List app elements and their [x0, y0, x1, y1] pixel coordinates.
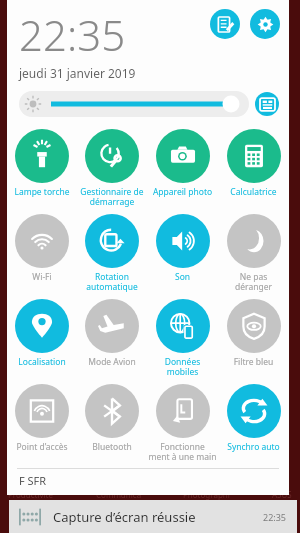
button[interactable]: Edit quick settings — [210, 9, 240, 39]
button[interactable]: Settings — [250, 9, 280, 39]
staticText: Appareil photo — [148, 186, 217, 198]
button[interactable]: Capture d’écran réussie — [9, 500, 297, 533]
button[interactable]: Bluetooth — [77, 381, 147, 466]
button[interactable]: Lampe torche — [7, 126, 77, 211]
button[interactable]: Gestionnaire de démarrage — [77, 126, 147, 211]
staticText: Photographi — [183, 489, 230, 500]
staticText: Filtre bleu — [219, 356, 288, 368]
staticText: Productivité — [8, 489, 54, 500]
staticText: Wi-Fi — [8, 271, 76, 283]
button[interactable]: Données mobiles — [147, 296, 218, 381]
staticText: Données mobiles — [148, 356, 217, 377]
staticText: jeudi 31 janvier 2019 — [19, 65, 136, 81]
staticText: Rotation automatique — [78, 271, 146, 292]
staticText: Calculatrice — [219, 186, 288, 198]
staticText: Lampe torche — [8, 186, 76, 198]
button[interactable]: Rotation automatique — [77, 211, 147, 296]
button[interactable]: Point d’accès — [7, 381, 77, 466]
staticText: Fonctionne ment à une main — [148, 441, 217, 462]
button[interactable]: Auto brightness — [255, 92, 279, 116]
staticText: Gestionnaire de démarrage — [78, 186, 146, 207]
button[interactable]: Ne pas déranger — [218, 211, 289, 296]
staticText: Bluetooth — [78, 441, 146, 453]
staticText: 22:35 — [263, 511, 287, 523]
staticText: Ne pas déranger — [219, 271, 288, 292]
button[interactable]: Localisation — [7, 296, 77, 381]
button[interactable]: Appareil photo — [147, 126, 218, 211]
button[interactable]: Son — [147, 211, 218, 296]
staticText: 22:35 — [19, 6, 126, 63]
staticText: Communica — [96, 489, 142, 500]
staticText: Son — [148, 271, 217, 283]
staticText: Synchro auto — [219, 441, 288, 453]
button[interactable]: Fonctionne ment à une main — [147, 381, 218, 466]
staticText: Capture d’écran réussie — [53, 508, 196, 526]
staticText: ASUS — [272, 489, 292, 500]
staticText: Point d’accès — [8, 441, 76, 453]
button[interactable]: Calculatrice — [218, 126, 289, 211]
button[interactable]: Filtre bleu — [218, 296, 289, 381]
button[interactable]: Wi-Fi — [7, 211, 77, 296]
button[interactable]: Synchro auto — [218, 381, 289, 466]
button[interactable] — [19, 91, 249, 117]
button[interactable]: Mode Avion — [77, 296, 147, 381]
staticText: F SFR — [19, 473, 47, 488]
staticText: Mode Avion — [78, 356, 146, 368]
staticText: Localisation — [8, 356, 76, 368]
